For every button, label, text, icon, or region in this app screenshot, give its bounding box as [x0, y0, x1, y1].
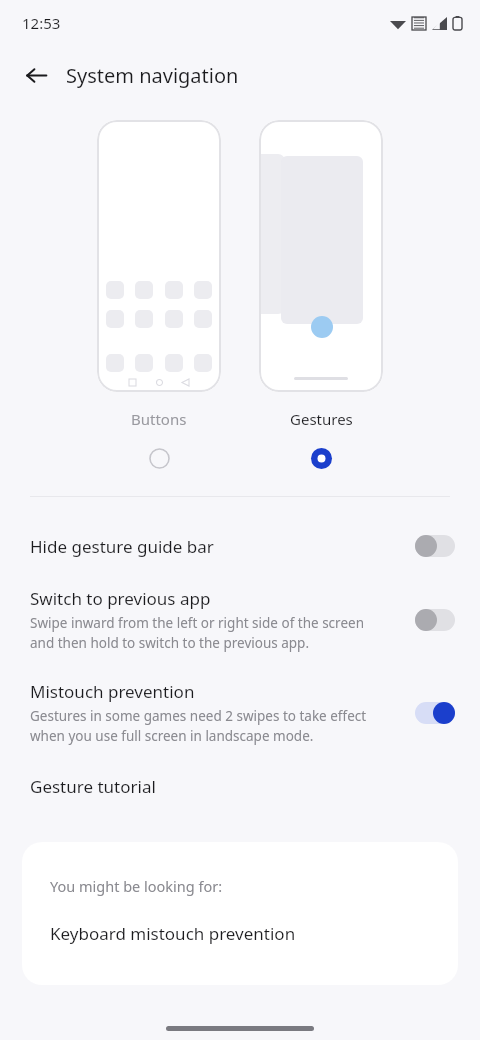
staticText: System navigation: [66, 62, 239, 89]
staticText: Gesture tutorial: [30, 775, 156, 798]
button[interactable]: Switch to previous app: [0, 573, 480, 666]
button[interactable]: Hide gesture guide bar: [0, 519, 480, 573]
staticText: Keyboard mistouch prevention: [50, 922, 296, 945]
button[interactable]: On: [412, 700, 458, 726]
button[interactable]: Off: [412, 607, 458, 633]
staticText: Hide gesture guide bar: [30, 535, 214, 558]
button[interactable]: You might be looking for:: [22, 842, 458, 985]
staticText: Gestures in some games need 2 swipes to …: [30, 707, 367, 745]
button[interactable]: Not selected: [143, 442, 175, 474]
staticText: Swipe inward from the left or right side…: [30, 614, 364, 652]
button[interactable]: Gestures: [259, 120, 383, 474]
staticText: Mistouch prevention: [30, 680, 195, 703]
button[interactable]: Back: [14, 53, 58, 97]
staticText: You might be looking for:: [50, 876, 223, 896]
staticText: Gestures: [290, 409, 353, 429]
staticText: Buttons: [131, 409, 187, 429]
button[interactable]: Mistouch prevention: [0, 666, 480, 759]
button[interactable]: Off: [412, 533, 458, 559]
button[interactable]: Buttons: [97, 120, 221, 474]
staticText: Switch to previous app: [30, 587, 211, 610]
button[interactable]: Selected: [305, 442, 337, 474]
button[interactable]: Gesture tutorial: [0, 759, 480, 814]
staticText: 12:53: [22, 13, 61, 33]
